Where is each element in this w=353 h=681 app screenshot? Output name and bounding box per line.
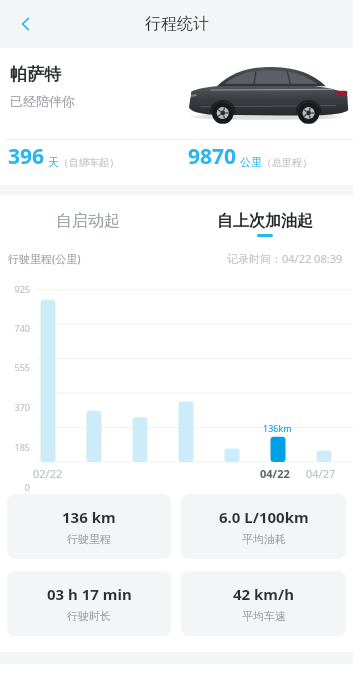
staticText: （自绑车起） (59, 156, 119, 169)
staticText: 行驶时长 (67, 609, 111, 623)
staticText: 记录时间：04/22 08:39 (227, 251, 343, 266)
staticText: （总里程） (262, 156, 312, 169)
staticText: 0 (24, 481, 30, 493)
staticText: 04/22 (260, 466, 290, 481)
staticText: 555 (14, 361, 30, 373)
staticText: 行驶里程 (67, 532, 111, 546)
button[interactable]: 136 km (7, 494, 171, 559)
staticText: 自启动起 (56, 211, 120, 231)
button[interactable]: 自上次加油起 (176, 211, 353, 237)
staticText: 02/22 (33, 466, 63, 481)
staticText: 自上次加油起 (217, 211, 313, 231)
staticText: 740 (14, 322, 30, 334)
staticText: 9870 (188, 142, 237, 171)
staticText: 已经陪伴你 (10, 93, 75, 109)
staticText: 04/27 (306, 466, 336, 481)
staticText: 6.0 L/100km (219, 507, 309, 527)
staticText: 行驶里程(公里) (8, 251, 81, 266)
staticText: 370 (14, 401, 30, 413)
button[interactable]: 6.0 L/100km (181, 494, 346, 559)
staticText: 42 km/h (233, 584, 294, 604)
staticText: 136km (263, 422, 292, 434)
button[interactable]: Back (6, 4, 46, 44)
staticText: 天 (48, 155, 59, 169)
staticText: 925 (14, 283, 30, 295)
staticText: 平均油耗 (242, 532, 286, 546)
staticText: 136 km (62, 507, 116, 527)
staticText: 185 (14, 441, 30, 453)
staticText: 396 (8, 142, 45, 171)
staticText: 03 h 17 min (47, 584, 132, 604)
button[interactable]: 42 km/h (181, 571, 346, 636)
button[interactable]: 03 h 17 min (7, 571, 171, 636)
staticText: 帕萨特 (10, 64, 61, 85)
staticText: 行程统计 (145, 14, 209, 34)
button[interactable]: 自启动起 (0, 211, 176, 231)
staticText: 平均车速 (242, 609, 286, 623)
staticText: 公里 (240, 155, 262, 169)
